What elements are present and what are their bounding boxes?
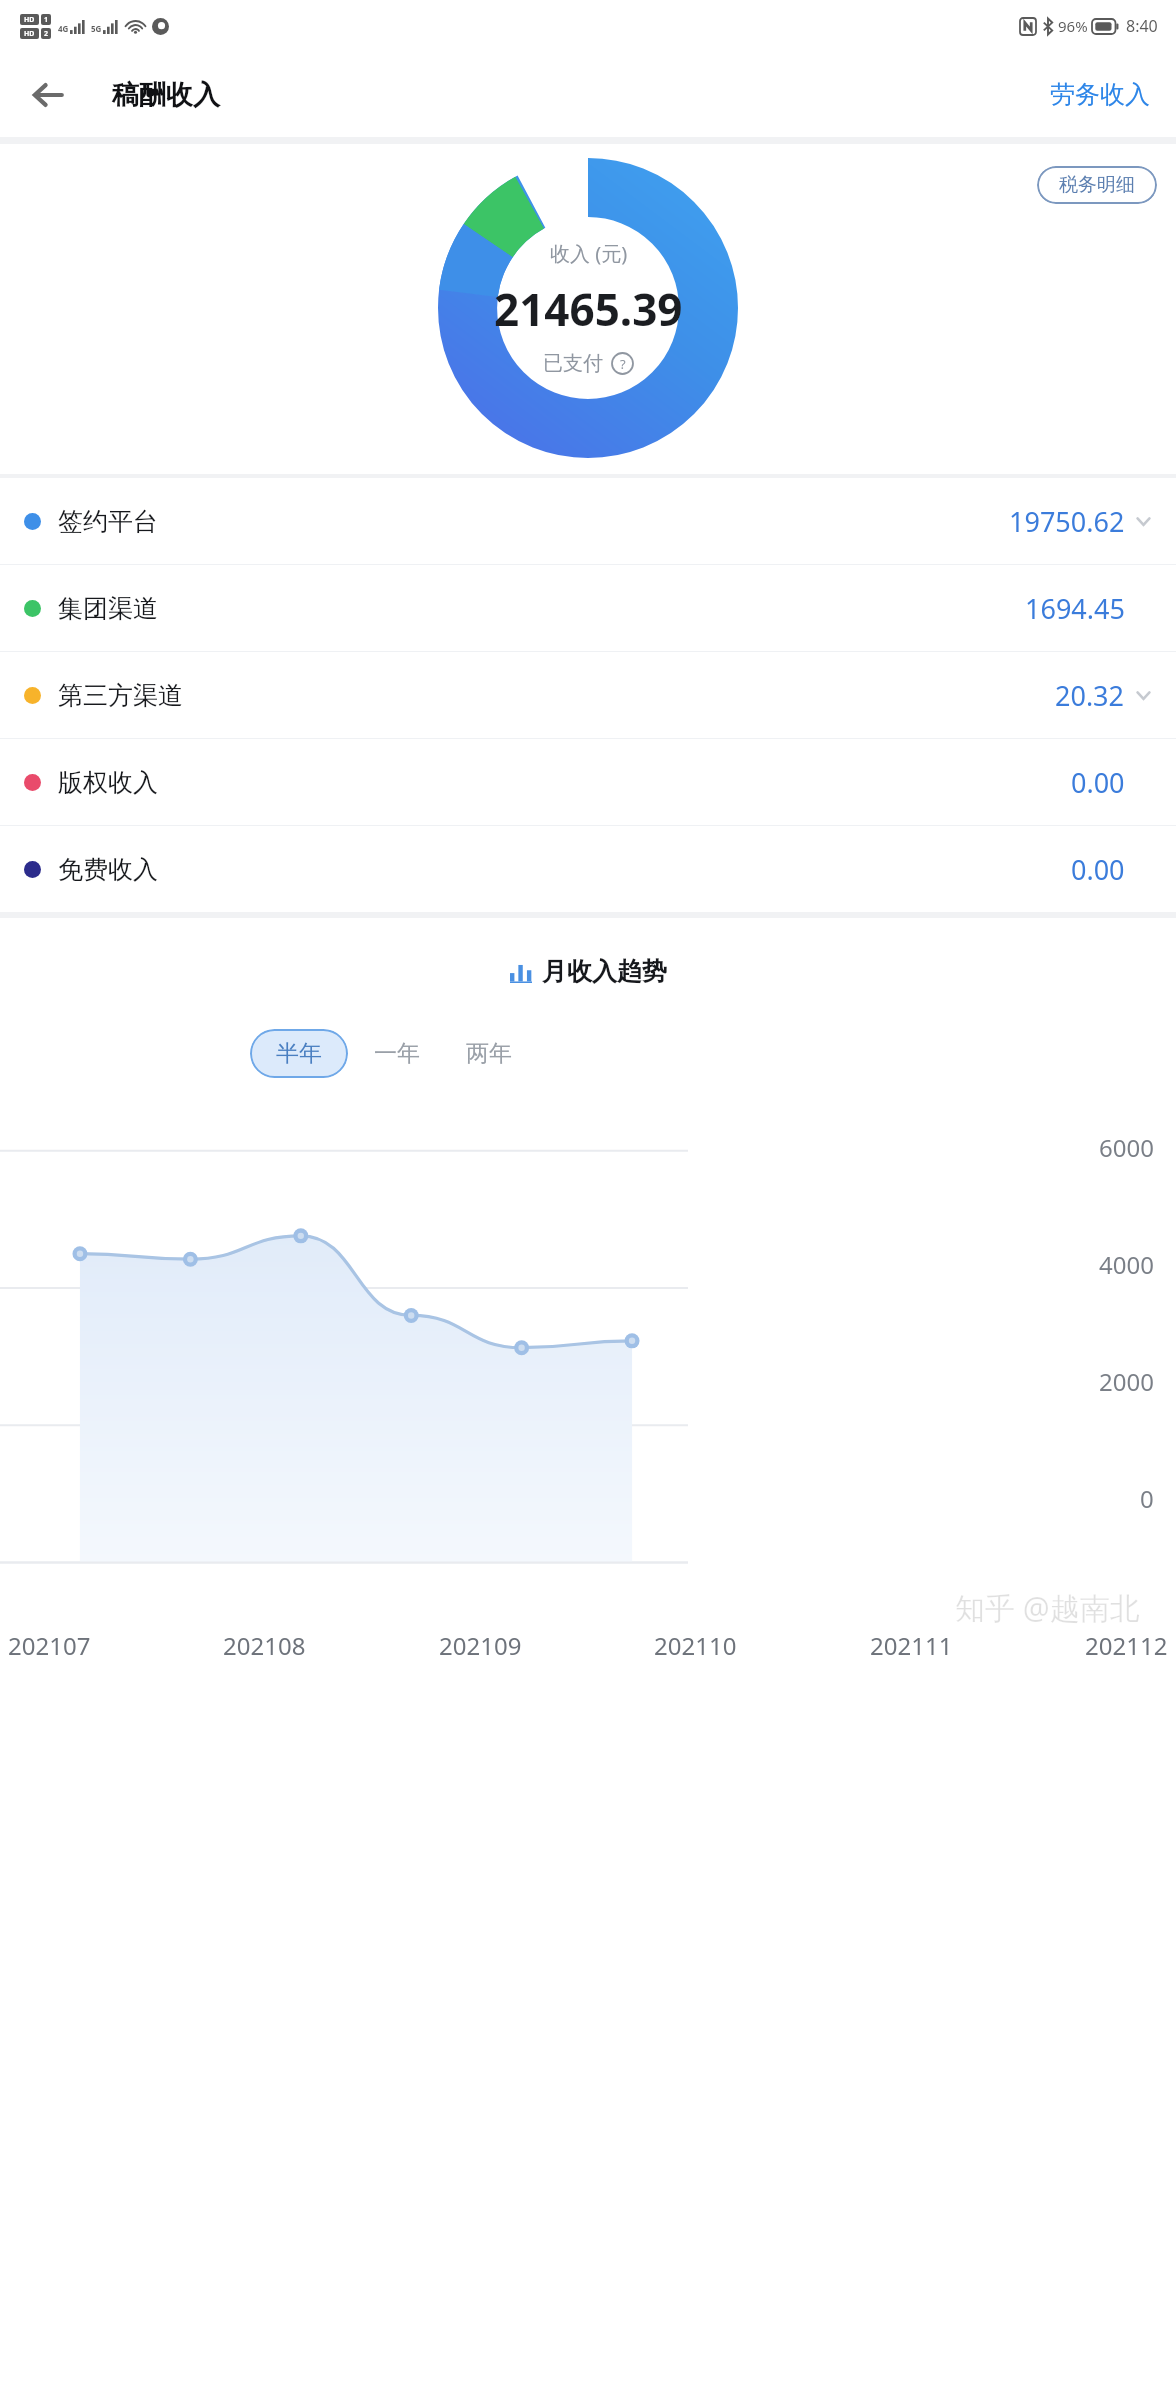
staticText: 1 [44,15,49,25]
staticText: 19750.62 [1009,503,1125,540]
button[interactable]: 版权收入 [0,739,1176,825]
staticText: 月收入趋势 [542,956,667,987]
staticText: 0.00 [1071,764,1125,801]
staticText: 1694.45 [1025,590,1125,627]
button[interactable]: 半年 [250,1029,348,1078]
staticText: 一年 [374,1039,420,1068]
staticText: 签约平台 [58,506,158,537]
staticText: 4G [58,23,69,34]
staticText: 202109 [439,1629,522,1662]
staticText: 集团渠道 [58,593,158,624]
staticText: 5G [91,23,102,34]
staticText: 版权收入 [58,767,158,798]
staticText: 0 [1140,1482,1154,1515]
staticText: 21465.39 [494,279,683,339]
staticText: 两年 [466,1039,512,1068]
button[interactable]: 两年 [446,1027,532,1080]
staticText: 6000 [1099,1131,1154,1164]
button[interactable]: Back [20,67,76,123]
button[interactable]: 集团渠道 [0,565,1176,651]
staticText: 202107 [8,1629,91,1662]
staticText: 202111 [870,1629,953,1662]
button[interactable]: 免费收入 [0,826,1176,912]
staticText: 劳务收入 [1050,79,1150,110]
staticText: 8:40 [1126,15,1158,37]
button[interactable]: 劳务收入 [1042,69,1158,120]
button[interactable]: 一年 [348,1027,446,1080]
staticText: 已支付 [543,351,603,376]
staticText: ? [620,355,626,373]
button[interactable]: 第三方渠道 [0,652,1176,738]
staticText: 202110 [654,1629,737,1662]
button[interactable]: 税务明细 [1037,166,1157,204]
staticText: 202112 [1085,1629,1168,1662]
staticText: 半年 [276,1039,322,1068]
staticText: 96% [1058,16,1088,36]
staticText: HD [24,29,35,39]
staticText: 免费收入 [58,854,158,885]
staticText: HD [24,15,35,25]
button[interactable]: 签约平台 [0,478,1176,564]
staticText: 2 [44,29,49,39]
staticText: 4000 [1099,1248,1154,1281]
staticText: 20.32 [1055,677,1125,714]
staticText: 2000 [1099,1365,1154,1398]
staticText: 知乎 @越南北 [955,1587,1140,1628]
staticText: 0.00 [1071,851,1125,888]
staticText: 202108 [223,1629,306,1662]
staticText: 第三方渠道 [58,680,183,711]
button[interactable]: Help [611,352,634,375]
staticText: 税务明细 [1059,173,1135,197]
staticText: 收入 (元) [550,240,628,267]
staticText: 稿酬收入 [112,78,220,112]
